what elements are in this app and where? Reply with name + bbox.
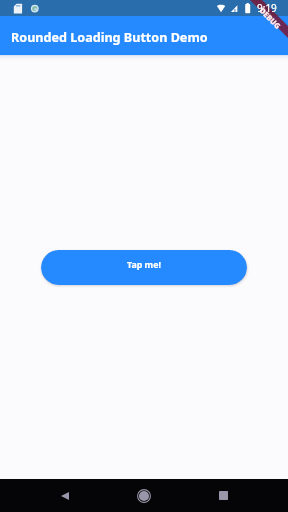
staticText: Tap me!: [127, 259, 161, 271]
staticText: DEBUG: [257, 5, 283, 31]
button[interactable]: Recent apps: [203, 479, 243, 512]
button[interactable]: Tap me!: [41, 250, 247, 285]
button[interactable]: Home: [124, 479, 164, 512]
staticText: Rounded Loading Button Demo: [11, 29, 208, 46]
button[interactable]: Back: [44, 479, 85, 512]
staticText: 9:19: [257, 1, 283, 15]
